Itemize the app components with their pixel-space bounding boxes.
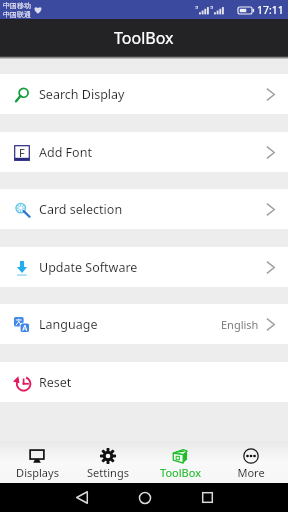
staticText: More <box>237 465 265 480</box>
staticText: Update Software <box>39 259 138 276</box>
button[interactable]: Back <box>50 483 113 512</box>
button[interactable]: Reset <box>0 362 288 402</box>
staticText: Language <box>39 316 98 333</box>
button[interactable]: Displays <box>2 441 72 483</box>
button[interactable]: Recents <box>176 483 239 512</box>
button[interactable]: Home <box>113 483 176 512</box>
button[interactable]: Search Display <box>0 74 288 114</box>
button[interactable]: Update Software <box>0 247 288 287</box>
button[interactable]: ToolBox <box>145 441 215 483</box>
staticText: ToolBox <box>114 27 174 49</box>
button[interactable]: More <box>216 441 286 483</box>
button[interactable]: F <box>0 132 288 172</box>
staticText: Search Display <box>39 86 125 103</box>
staticText: ToolBox <box>160 465 201 480</box>
staticText: Add Font <box>39 144 92 161</box>
button[interactable]: Language <box>0 304 288 344</box>
staticText: Displays <box>16 465 59 480</box>
staticText: Settings <box>87 465 129 480</box>
staticText: 中国移动 <box>3 1 31 10</box>
staticText: English <box>221 317 259 332</box>
staticText: 17:11 <box>257 3 284 17</box>
button[interactable]: Card selection <box>0 189 288 229</box>
staticText: Card selection <box>39 201 123 218</box>
staticText: Reset <box>39 374 72 391</box>
button[interactable]: Settings <box>73 441 143 483</box>
staticText: 中国联通 <box>3 10 31 19</box>
staticText: F <box>19 145 25 160</box>
